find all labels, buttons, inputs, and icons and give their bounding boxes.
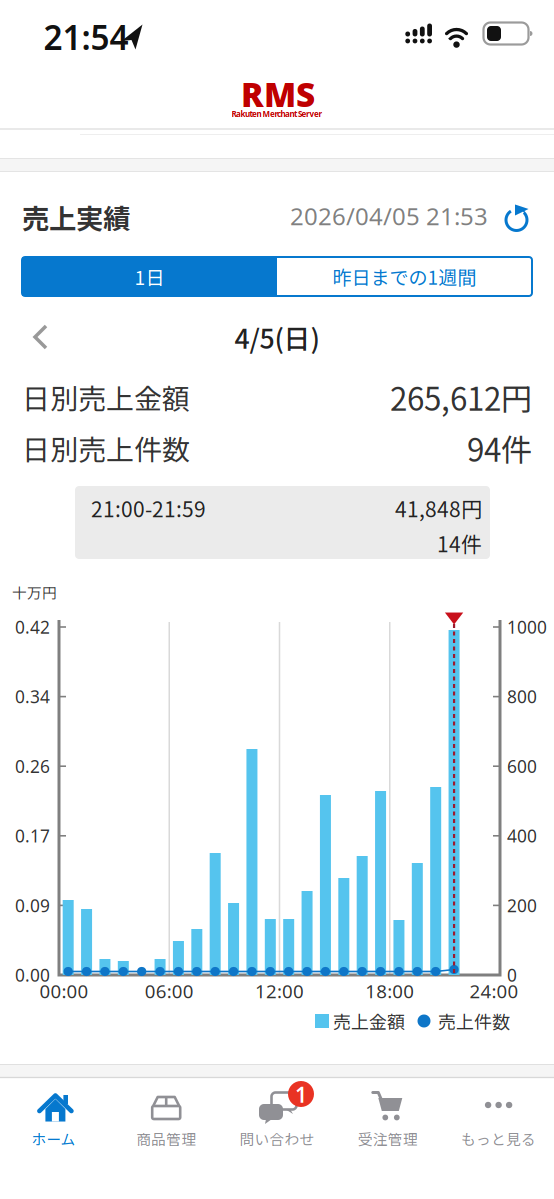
staticText: 00:00	[39, 979, 88, 1003]
staticText: RMS	[241, 72, 315, 116]
staticText: 94件	[467, 425, 532, 471]
staticText: 1000	[507, 615, 547, 638]
staticText: 0.17	[15, 824, 50, 847]
staticText: ホーム	[31, 1128, 75, 1149]
staticText: もっと見る	[461, 1128, 536, 1149]
button[interactable]	[499, 198, 535, 234]
staticText: 0.00	[15, 963, 50, 986]
staticText: 0	[507, 963, 517, 986]
button[interactable]: 1日	[22, 257, 277, 296]
staticText: 昨日までの1週間	[332, 263, 476, 290]
staticText: 0.42	[15, 615, 50, 638]
staticText: 400	[507, 824, 537, 847]
staticText: 24:00	[469, 979, 518, 1003]
button[interactable]: 商品管理	[111, 1078, 221, 1199]
staticText: 2026/04/05 21:53	[290, 200, 488, 232]
staticText: 12:00	[255, 979, 304, 1003]
staticText: 21:00-21:59	[91, 493, 206, 523]
staticText: 1日	[134, 262, 164, 290]
staticText: 売上実績	[22, 197, 130, 237]
staticText: 21:54	[43, 15, 128, 59]
staticText: 十万円	[12, 581, 57, 603]
button[interactable]: 昨日までの1週間	[277, 257, 532, 296]
staticText: 4/5(日)	[234, 318, 319, 356]
staticText: 日別売上件数	[22, 428, 190, 468]
staticText: 問い合わせ	[239, 1128, 314, 1149]
button[interactable]: 1	[222, 1078, 332, 1199]
staticText: 265,612円	[390, 374, 532, 420]
staticText: 商品管理	[136, 1128, 196, 1149]
staticText: 18:00	[365, 979, 414, 1003]
staticText: 日別売上金額	[22, 377, 190, 417]
staticText: 0.09	[15, 894, 50, 917]
staticText: 200	[507, 894, 537, 917]
staticText: 0.26	[15, 755, 50, 778]
staticText: Rakuten Merchant Server	[231, 109, 322, 119]
button[interactable]: ホーム	[0, 1078, 110, 1199]
button[interactable]: 受注管理	[333, 1078, 443, 1199]
staticText: 0.34	[15, 685, 50, 708]
staticText: 受注管理	[358, 1128, 418, 1149]
staticText: 14件	[437, 528, 482, 558]
staticText: 06:00	[145, 979, 194, 1003]
staticText: 売上金額	[333, 1008, 405, 1034]
button[interactable]	[20, 320, 60, 354]
staticText: 1	[295, 1080, 307, 1109]
staticText: 41,848円	[395, 493, 482, 523]
staticText: 600	[507, 755, 537, 778]
staticText: 売上件数	[438, 1008, 510, 1034]
button[interactable]: もっと見る	[444, 1078, 554, 1199]
staticText: 800	[507, 685, 537, 708]
